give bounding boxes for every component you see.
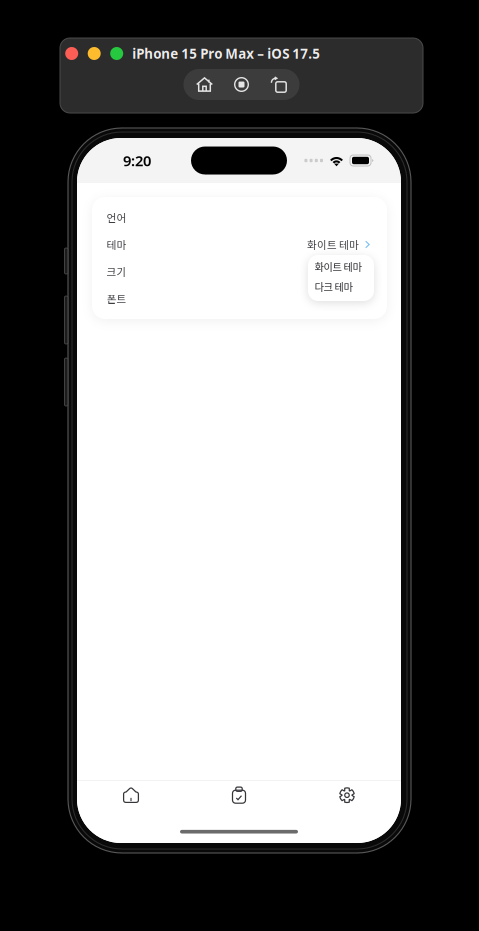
button[interactable]: Home — [77, 778, 185, 812]
button[interactable]: 화이트 테마 — [308, 256, 374, 276]
staticText: 크기 — [106, 264, 126, 279]
button[interactable]: 크기 — [92, 258, 387, 285]
staticText: 테마 — [106, 237, 126, 252]
button[interactable]: 다크 테마 — [308, 276, 374, 296]
button[interactable]: 테마 — [92, 231, 387, 258]
staticText: 화이트 테마 — [307, 237, 359, 252]
button[interactable]: Minimize window — [88, 47, 101, 60]
button[interactable]: Settings — [293, 778, 401, 812]
staticText: iPhone 15 Pro Max – iOS 17.5 — [132, 45, 320, 62]
staticText: 화이트 테마 — [314, 259, 361, 274]
button[interactable]: 언어 — [92, 204, 387, 231]
staticText: 9:20 — [123, 151, 151, 170]
button[interactable]: Tasks — [185, 778, 293, 812]
button[interactable]: 폰트 — [92, 285, 387, 312]
staticText: 폰트 — [106, 291, 126, 306]
button[interactable]: Close window — [65, 47, 78, 60]
button[interactable]: Zoom window — [110, 47, 123, 60]
staticText: 다크 테마 — [314, 279, 352, 294]
staticText: 언어 — [106, 210, 126, 225]
button[interactable]: Simulator toolbar — [183, 69, 299, 100]
